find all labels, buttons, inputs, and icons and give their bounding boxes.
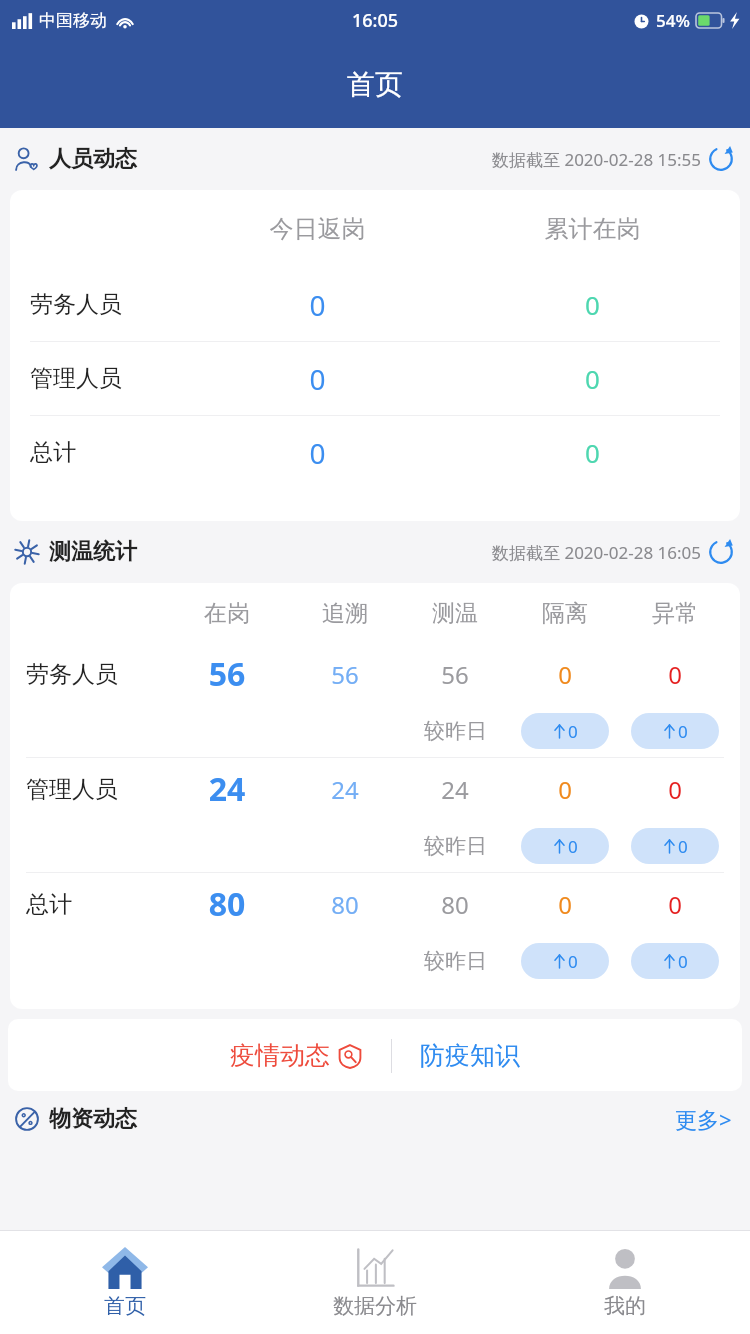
staticText: 24 (164, 767, 290, 811)
staticText: 80 (290, 888, 400, 921)
button[interactable]: 疫情动态 (224, 1034, 369, 1077)
staticText: 追溯 (290, 599, 400, 628)
button[interactable]: Refresh (706, 144, 736, 174)
staticText: 首页 (104, 1293, 146, 1319)
staticText: 隔离 (510, 599, 620, 628)
staticText: 0 (180, 286, 455, 324)
staticText: 0 (620, 888, 730, 921)
button[interactable]: 0 (631, 828, 719, 864)
button[interactable]: 总计 (10, 873, 740, 987)
staticText: 今日返岗 (180, 214, 455, 244)
button[interactable]: 0 (631, 943, 719, 979)
button[interactable]: Refresh (706, 537, 736, 567)
staticText: 0 (620, 773, 730, 806)
staticText: 0 (620, 658, 730, 691)
staticText: 测温统计 (49, 538, 137, 566)
staticText: 防疫知识 (420, 1040, 520, 1071)
button[interactable]: 防疫知识 (414, 1034, 526, 1077)
staticText: 劳务人员 (30, 290, 180, 319)
staticText: 在岗 (164, 599, 290, 628)
staticText: 80 (400, 888, 510, 921)
staticText: 中国移动 (39, 10, 107, 31)
button[interactable]: 0 (521, 828, 609, 864)
button[interactable]: 数据分析 (250, 1231, 500, 1334)
staticText: 0 (510, 888, 620, 921)
button[interactable]: 劳务人员 (10, 268, 740, 341)
staticText: 首页 (347, 67, 403, 102)
staticText: 数据截至 2020-02-28 15:55 (492, 148, 702, 171)
staticText: 异常 (620, 599, 730, 628)
staticText: 管理人员 (30, 364, 180, 393)
button[interactable]: 0 (521, 713, 609, 749)
staticText: 0 (678, 835, 688, 858)
staticText: 更多> (675, 1104, 732, 1134)
staticText: 56 (290, 658, 400, 691)
staticText: 56 (164, 652, 290, 696)
staticText: 物资动态 (49, 1105, 137, 1133)
staticText: 24 (400, 773, 510, 806)
staticText: 0 (455, 287, 730, 322)
staticText: 累计在岗 (455, 214, 730, 244)
staticText: 0 (678, 950, 688, 973)
staticText: 劳务人员 (26, 660, 164, 689)
button[interactable]: 0 (521, 943, 609, 979)
button[interactable]: 我的 (500, 1231, 750, 1334)
staticText: 管理人员 (26, 775, 164, 804)
staticText: 较昨日 (424, 833, 487, 859)
button[interactable]: 0 (631, 713, 719, 749)
staticText: 0 (568, 835, 578, 858)
staticText: 较昨日 (424, 718, 487, 744)
staticText: 0 (510, 658, 620, 691)
staticText: 0 (568, 720, 578, 743)
staticText: 54% (656, 9, 690, 32)
button[interactable]: 管理人员 (10, 758, 740, 872)
staticText: 0 (455, 361, 730, 396)
staticText: 我的 (604, 1293, 646, 1319)
button[interactable]: 管理人员 (10, 342, 740, 415)
staticText: 测温 (400, 599, 510, 628)
staticText: 总计 (26, 890, 164, 919)
staticText: 较昨日 (424, 948, 487, 974)
staticText: 疫情动态 (230, 1040, 330, 1071)
button[interactable]: 首页 (0, 1231, 250, 1334)
staticText: 总计 (30, 438, 180, 467)
staticText: 0 (568, 950, 578, 973)
staticText: 人员动态 (49, 145, 137, 173)
staticText: 56 (400, 658, 510, 691)
staticText: 数据分析 (333, 1293, 417, 1319)
staticText: 80 (164, 882, 290, 926)
staticText: 0 (510, 773, 620, 806)
button[interactable]: 劳务人员 (10, 643, 740, 757)
staticText: 0 (455, 435, 730, 470)
button[interactable]: 更多> (671, 1100, 736, 1138)
staticText: 0 (678, 720, 688, 743)
staticText: 24 (290, 773, 400, 806)
staticText: 数据截至 2020-02-28 16:05 (492, 541, 702, 564)
staticText: 0 (180, 434, 455, 472)
staticText: 16:05 (352, 8, 399, 33)
button[interactable]: 总计 (10, 416, 740, 489)
staticText: 0 (180, 360, 455, 398)
